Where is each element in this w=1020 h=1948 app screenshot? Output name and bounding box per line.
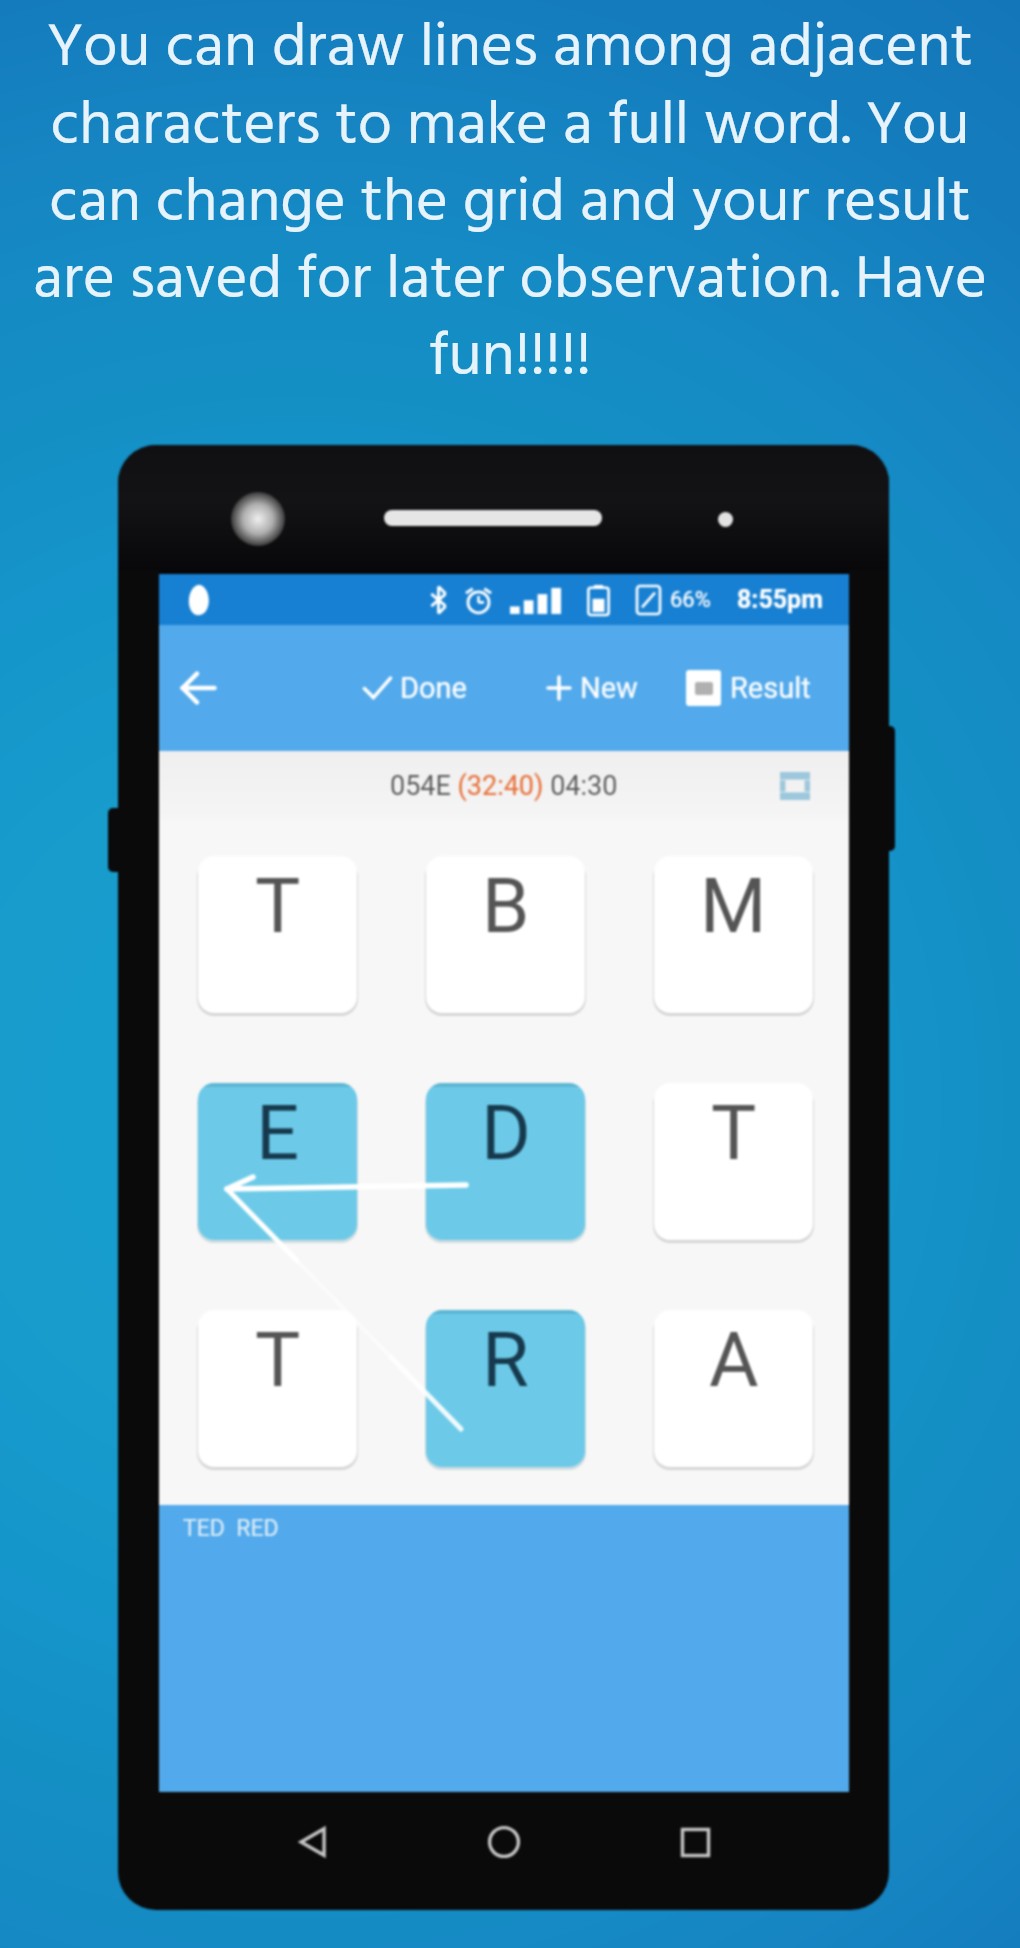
button[interactable]: New (538, 655, 646, 721)
staticText: E (256, 1088, 300, 1177)
button[interactable]: Done (354, 655, 475, 721)
button[interactable]: Layout options (773, 764, 817, 808)
button[interactable]: B (426, 856, 585, 1013)
staticText: T (711, 1088, 757, 1177)
button[interactable]: R (426, 1310, 585, 1467)
staticText: You can draw lines among adjacent charac… (28, 1, 992, 407)
button[interactable]: System back (278, 1806, 350, 1878)
button[interactable]: T (198, 856, 357, 1013)
staticText: T (255, 1315, 301, 1404)
staticText: M (700, 861, 767, 950)
staticText: 054E (32:40) 04:30 (390, 770, 618, 802)
staticText: T (255, 861, 301, 950)
button[interactable]: Result (678, 654, 819, 722)
staticText: New (580, 671, 638, 705)
button[interactable]: D (426, 1083, 585, 1240)
staticText: A (709, 1315, 759, 1404)
staticText: 66% (670, 587, 711, 613)
staticText: 8:55pm (737, 585, 823, 614)
button[interactable]: Recent apps (659, 1806, 731, 1878)
staticText: B (482, 861, 530, 950)
staticText: R (482, 1315, 529, 1404)
staticText: TED RED (183, 1515, 279, 1542)
button[interactable]: Back (163, 654, 231, 722)
button[interactable]: Home (468, 1806, 540, 1878)
staticText: Result (730, 671, 811, 705)
staticText: D (481, 1088, 531, 1177)
button[interactable]: M (654, 856, 813, 1013)
button[interactable]: A (654, 1310, 813, 1467)
button[interactable]: T (198, 1310, 357, 1467)
button[interactable]: E (198, 1083, 357, 1240)
button[interactable]: T (654, 1083, 813, 1240)
staticText: Done (400, 671, 467, 705)
